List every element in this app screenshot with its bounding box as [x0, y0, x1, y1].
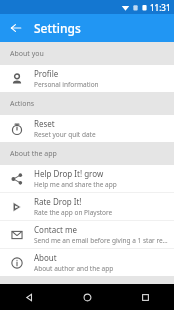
- button[interactable]: Back: [6, 18, 26, 38]
- staticText: Reset your quit date: [34, 130, 96, 139]
- button[interactable]: Rate: [0, 193, 174, 220]
- button[interactable]: Contact: [0, 221, 174, 248]
- staticText: About: [34, 252, 57, 263]
- other: Reset: [10, 122, 24, 136]
- button[interactable]: Profile: [0, 65, 174, 92]
- staticText: Reset: [34, 118, 55, 129]
- staticText: Rate Drop It!: [34, 196, 82, 207]
- staticText: Settings: [34, 20, 81, 36]
- other: Profile: [10, 72, 24, 86]
- staticText: 11:31: [150, 2, 171, 13]
- staticText: Send me an email before giving a 1 star …: [34, 236, 168, 245]
- staticText: Personal information: [34, 80, 99, 89]
- other: Rate: [10, 200, 24, 214]
- staticText: Contact me: [34, 224, 78, 235]
- staticText: Help Drop It! grow: [34, 168, 104, 179]
- staticText: About the app: [10, 149, 57, 159]
- button[interactable]: Share: [0, 165, 174, 192]
- other: Share: [10, 172, 24, 186]
- button[interactable]: Home: [58, 284, 116, 310]
- staticText: Help me and share the app: [34, 180, 117, 189]
- button[interactable]: About: [0, 249, 174, 276]
- staticText: About you: [10, 49, 44, 59]
- button[interactable]: Recents: [116, 284, 174, 310]
- other: Contact: [10, 228, 24, 242]
- button[interactable]: Reset: [0, 115, 174, 142]
- staticText: Actions: [10, 99, 35, 109]
- staticText: Rate the app on Playstore: [34, 208, 113, 217]
- other: About: [10, 256, 24, 270]
- staticText: About author and the app: [34, 264, 114, 273]
- button[interactable]: Back: [0, 284, 58, 310]
- staticText: Profile: [34, 68, 59, 79]
